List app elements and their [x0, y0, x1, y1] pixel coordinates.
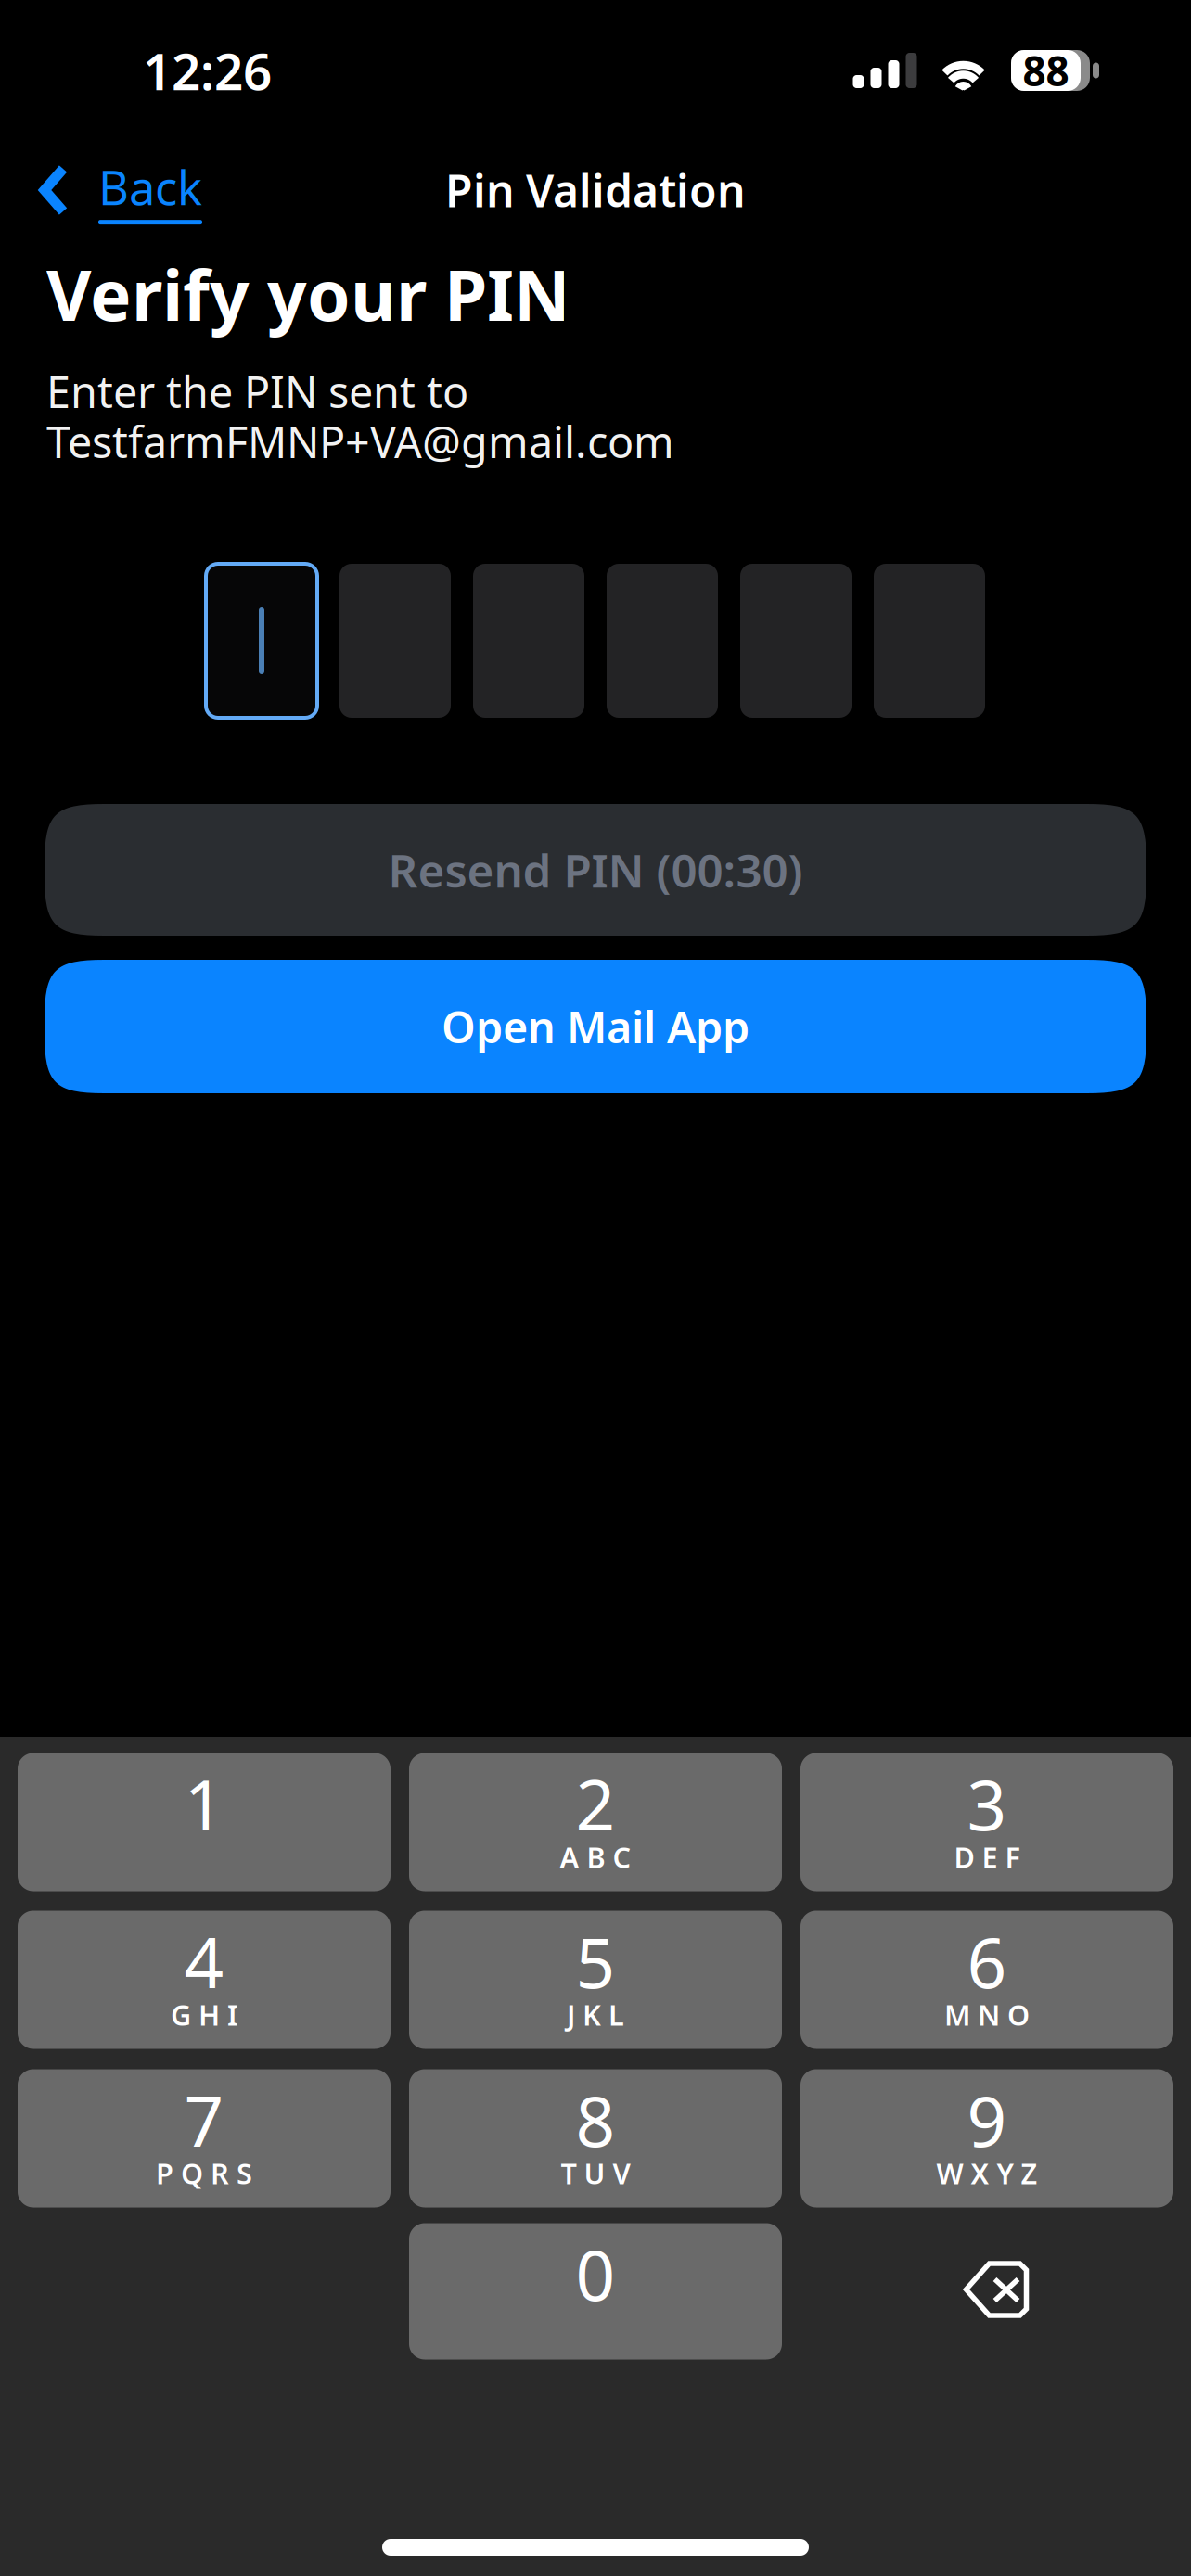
staticText: 3 [967, 1758, 1007, 1850]
staticText: A B C [560, 1838, 631, 1876]
button[interactable]: 8 [409, 2069, 782, 2207]
button[interactable]: PIN digit 1 [206, 564, 317, 718]
button[interactable]: 3 [800, 1753, 1173, 1891]
button[interactable]: Delete [800, 2223, 1173, 2359]
staticText: 4 [184, 1915, 224, 2007]
staticText: G H I [171, 1996, 237, 2033]
staticText: 2 [576, 1758, 615, 1850]
staticText: 8 [576, 2074, 615, 2166]
staticText: P Q R S [156, 2154, 252, 2192]
button[interactable]: 1 [18, 1753, 391, 1891]
staticText: 5 [576, 1915, 615, 2007]
staticText: Pin Validation [445, 161, 746, 220]
button[interactable]: PIN digit 3 [473, 564, 584, 718]
button[interactable]: Open Mail App [45, 960, 1146, 1093]
staticText: 9 [967, 2074, 1007, 2166]
staticText: W X Y Z [936, 2154, 1037, 2192]
staticText: Back [98, 156, 202, 218]
button[interactable]: 4 [18, 1911, 391, 2049]
button[interactable]: 6 [800, 1911, 1173, 2049]
staticText: 0 [576, 2228, 615, 2320]
staticText: T U V [561, 2154, 630, 2192]
button[interactable]: 9 [800, 2069, 1173, 2207]
staticText: Enter the PIN sent to [46, 363, 468, 420]
button[interactable]: PIN digit 2 [339, 564, 451, 718]
staticText: Verify your PIN [46, 248, 570, 340]
staticText: 6 [967, 1915, 1007, 2007]
staticText: TestfarmFMNP+VA@gmail.com [46, 413, 674, 470]
button[interactable]: PIN digit 4 [607, 564, 718, 718]
button[interactable]: 2 [409, 1753, 782, 1891]
staticText: M N O [944, 1996, 1030, 2033]
staticText: 12:26 [143, 37, 272, 104]
button[interactable]: PIN digit 5 [740, 564, 852, 718]
staticText: J K L [567, 1996, 624, 2033]
staticText: Resend PIN (00:30) [388, 839, 803, 900]
button[interactable]: 7 [18, 2069, 391, 2207]
button[interactable]: Resend PIN (00:30) [45, 804, 1146, 936]
staticText: D E F [954, 1838, 1020, 1876]
staticText: 7 [184, 2074, 224, 2166]
staticText: 88 [1023, 43, 1069, 98]
button[interactable]: Back [0, 162, 202, 218]
button[interactable]: 5 [409, 1911, 782, 2049]
staticText: Open Mail App [442, 998, 749, 1055]
button[interactable]: 0 [409, 2223, 782, 2359]
staticText: 1 [184, 1758, 224, 1850]
